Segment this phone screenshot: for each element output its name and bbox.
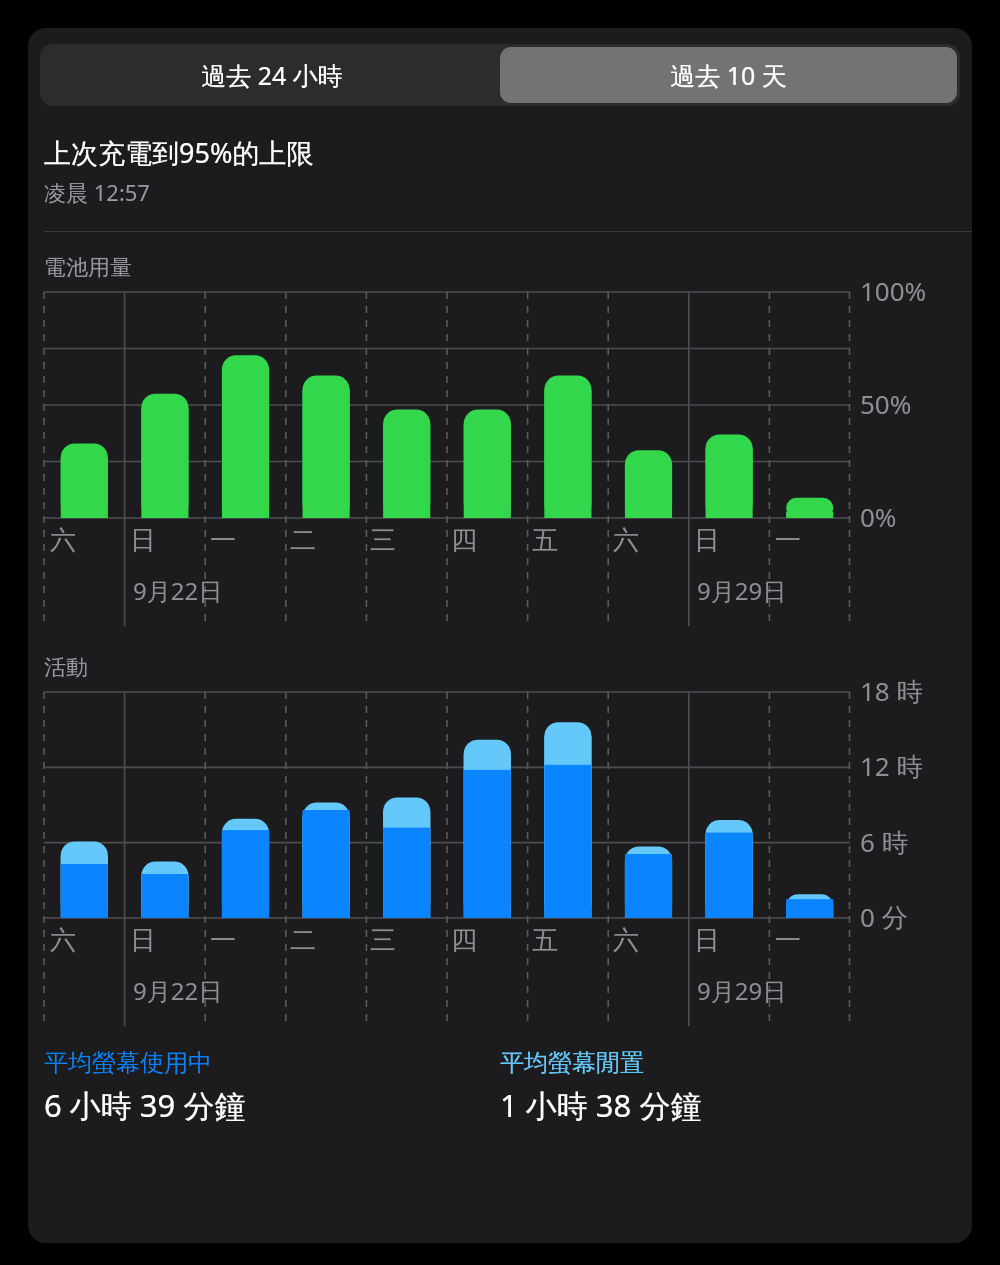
button[interactable]: 過去 24 小時	[43, 47, 500, 103]
staticText: 6 時	[860, 824, 908, 860]
staticText: 9月22日	[133, 574, 223, 607]
staticText: 日	[694, 524, 720, 557]
staticText: 三	[370, 524, 396, 557]
staticText: 過去 10 天	[670, 58, 787, 92]
staticText: 平均螢幕閒置	[500, 1048, 644, 1078]
staticText: 過去 24 小時	[201, 58, 343, 92]
staticText: 12 時	[860, 748, 923, 784]
staticText: 三	[370, 924, 396, 957]
staticText: 一	[210, 524, 236, 557]
staticText: 電池用量	[44, 254, 132, 282]
staticText: 四	[451, 924, 477, 957]
staticText: 50%	[860, 386, 912, 421]
staticText: 凌晨 12:57	[44, 177, 150, 207]
staticText: 0 分	[860, 899, 908, 935]
staticText: 0%	[860, 499, 897, 534]
staticText: 六	[50, 924, 76, 957]
staticText: 二	[290, 924, 316, 957]
staticText: 100%	[860, 273, 927, 308]
button[interactable]: 過去 10 天	[500, 47, 957, 103]
staticText: 1 小時 38 分鐘	[500, 1084, 702, 1126]
staticText: 9月22日	[133, 974, 223, 1007]
staticText: 6 小時 39 分鐘	[44, 1084, 246, 1126]
staticText: 一	[775, 924, 801, 957]
button[interactable]: 平均螢幕閒置	[500, 1048, 956, 1126]
staticText: 日	[694, 924, 720, 957]
button[interactable]: 平均螢幕使用中	[44, 1048, 500, 1126]
staticText: 六	[50, 524, 76, 557]
staticText: 四	[451, 524, 477, 557]
staticText: 平均螢幕使用中	[44, 1048, 212, 1078]
staticText: 活動	[44, 654, 88, 682]
staticText: 9月29日	[697, 974, 787, 1007]
staticText: 9月29日	[697, 574, 787, 607]
staticText: 六	[613, 924, 639, 957]
staticText: 五	[532, 924, 558, 957]
staticText: 一	[210, 924, 236, 957]
staticText: 18 時	[860, 673, 923, 709]
staticText: 上次充電到95%的上限	[44, 134, 314, 171]
staticText: 二	[290, 524, 316, 557]
staticText: 日	[130, 924, 156, 957]
staticText: 日	[130, 524, 156, 557]
staticText: 六	[613, 524, 639, 557]
staticText: 五	[532, 524, 558, 557]
staticText: 一	[775, 524, 801, 557]
